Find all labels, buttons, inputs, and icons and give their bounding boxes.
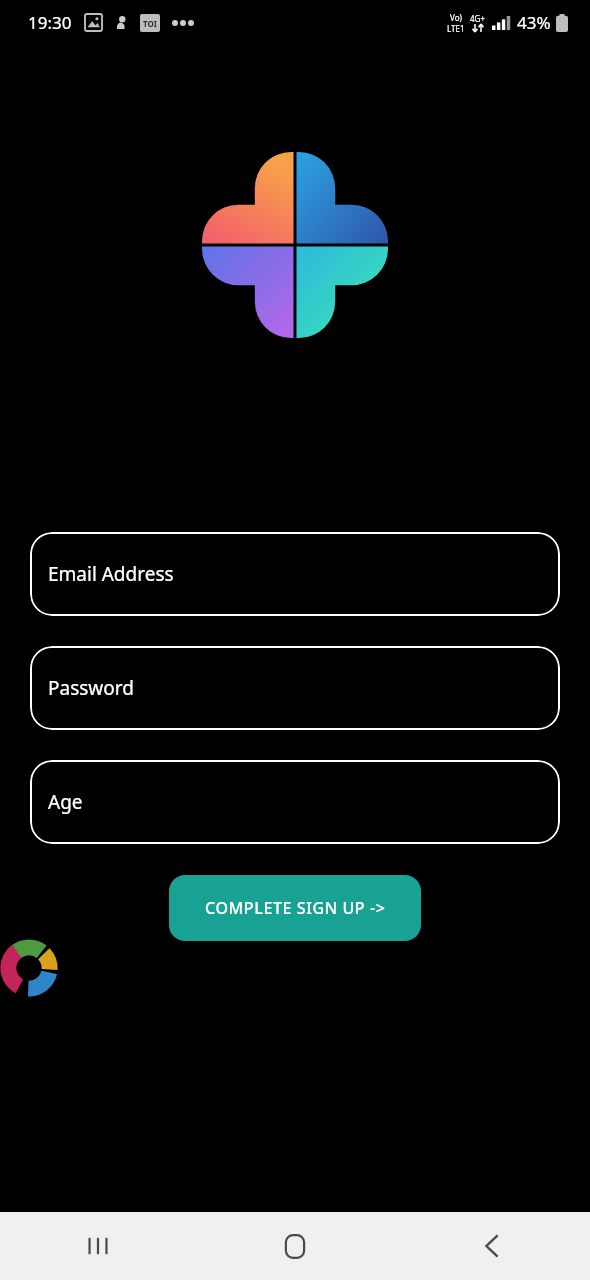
staticText: Age [48,789,83,815]
staticText: Vo) [450,12,462,23]
button[interactable]: Age [30,760,560,844]
button[interactable]: COMPLETE SIGN UP -> [169,875,421,941]
staticText: LTE1 [447,23,465,34]
staticText: 4G+ [470,13,485,24]
staticText: Email Address [48,561,174,587]
staticText: 19:30 [28,11,72,34]
staticText: 43% [517,11,551,34]
staticText: COMPLETE SIGN UP -> [205,897,386,919]
button[interactable]: Email Address [30,532,560,616]
button[interactable]: Back [393,1212,590,1280]
button[interactable]: Home [196,1212,393,1280]
staticText: Password [48,675,134,701]
staticText: TOI [143,18,157,29]
button[interactable]: Password [30,646,560,730]
button[interactable]: Recent apps [0,1212,196,1280]
